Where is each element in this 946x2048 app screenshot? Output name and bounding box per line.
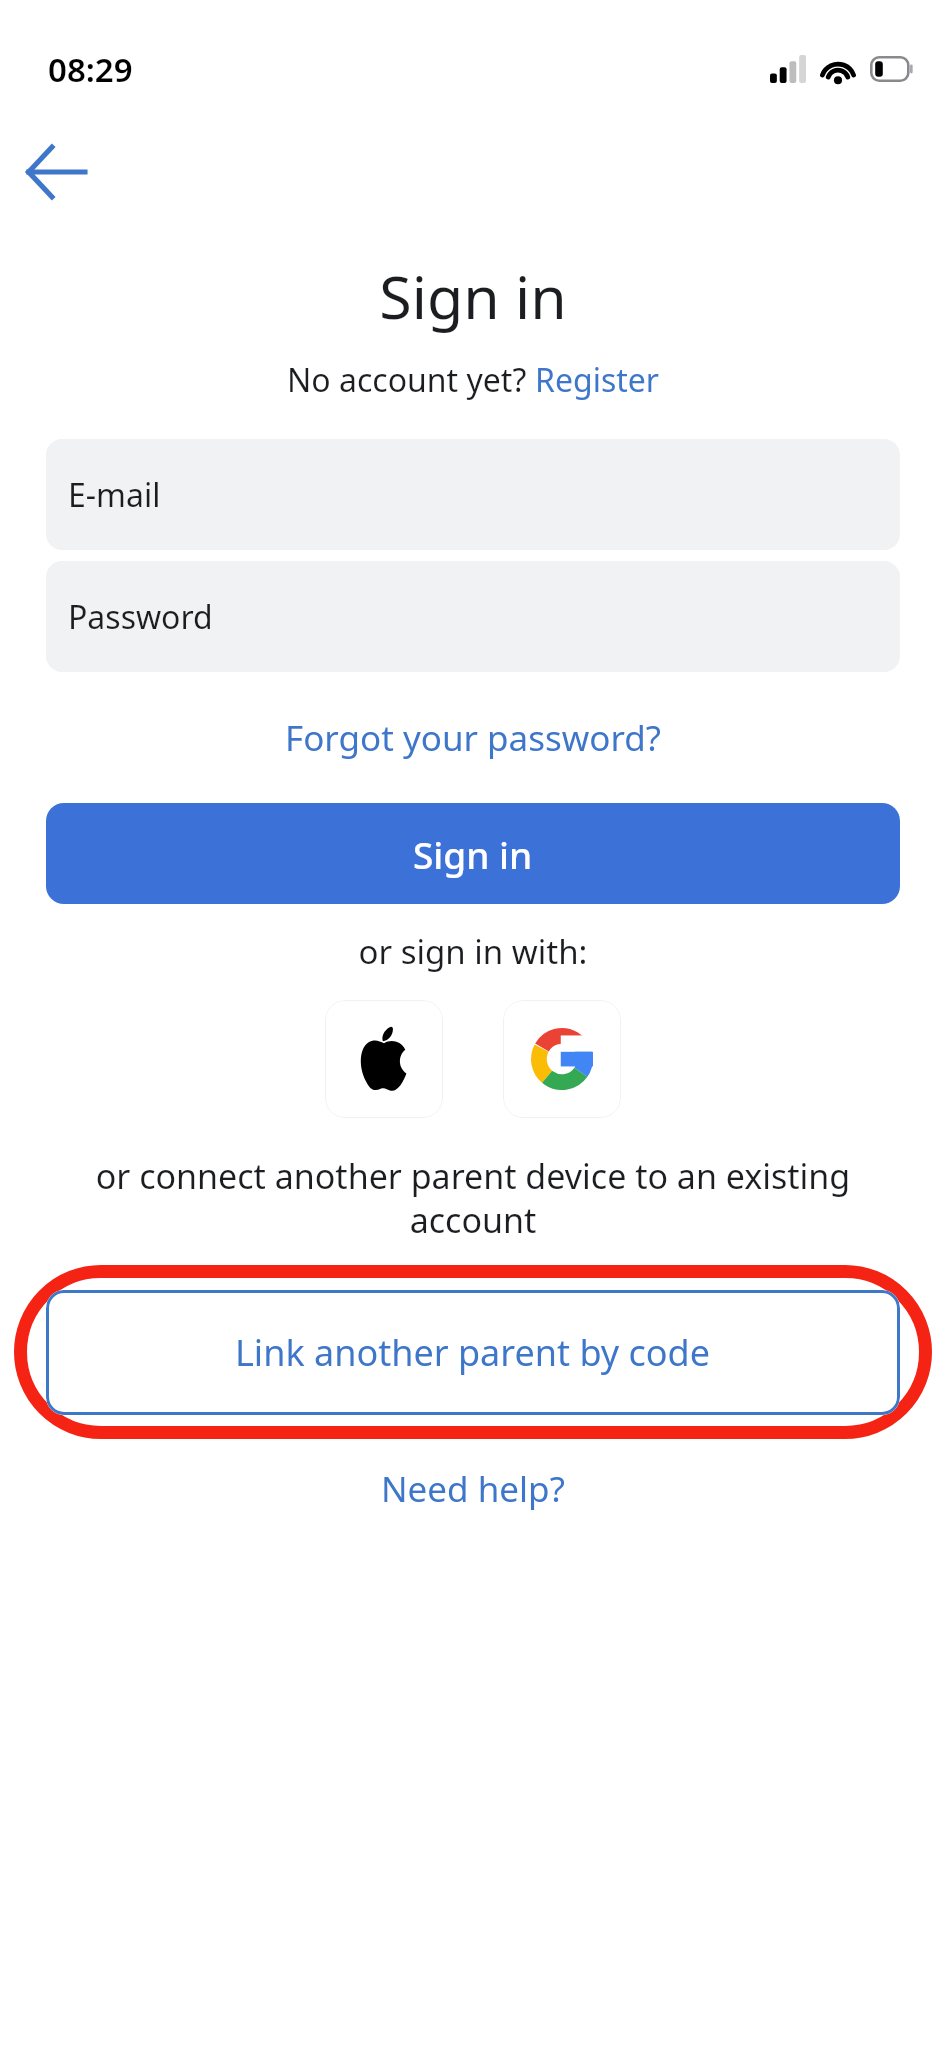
button[interactable]: Register (535, 358, 660, 402)
button[interactable]: Password (46, 561, 900, 672)
button[interactable]: Sign in (46, 803, 900, 904)
staticText: 08:29 (48, 47, 133, 92)
staticText: Need help? (381, 1465, 565, 1513)
button[interactable]: Link another parent by code (46, 1290, 900, 1415)
staticText: Sign in (0, 256, 946, 336)
button[interactable]: Sign in with Google (503, 1000, 621, 1118)
staticText: Sign in (413, 829, 533, 879)
button[interactable]: Back (14, 130, 98, 214)
button[interactable]: Need help? (381, 1465, 565, 1513)
staticText: or sign in with: (0, 929, 946, 974)
staticText: Password (68, 595, 213, 639)
staticText: E-mail (68, 473, 161, 517)
button[interactable]: Forgot your password? (285, 714, 661, 762)
button[interactable]: E-mail (46, 439, 900, 550)
staticText: or connect another parent device to an e… (70, 1153, 876, 1243)
staticText: No account yet? (287, 358, 535, 402)
staticText: Forgot your password? (285, 714, 661, 762)
staticText: Link another parent by code (235, 1328, 711, 1377)
button[interactable]: Sign in with Apple (325, 1000, 443, 1118)
staticText: Register (535, 358, 660, 402)
